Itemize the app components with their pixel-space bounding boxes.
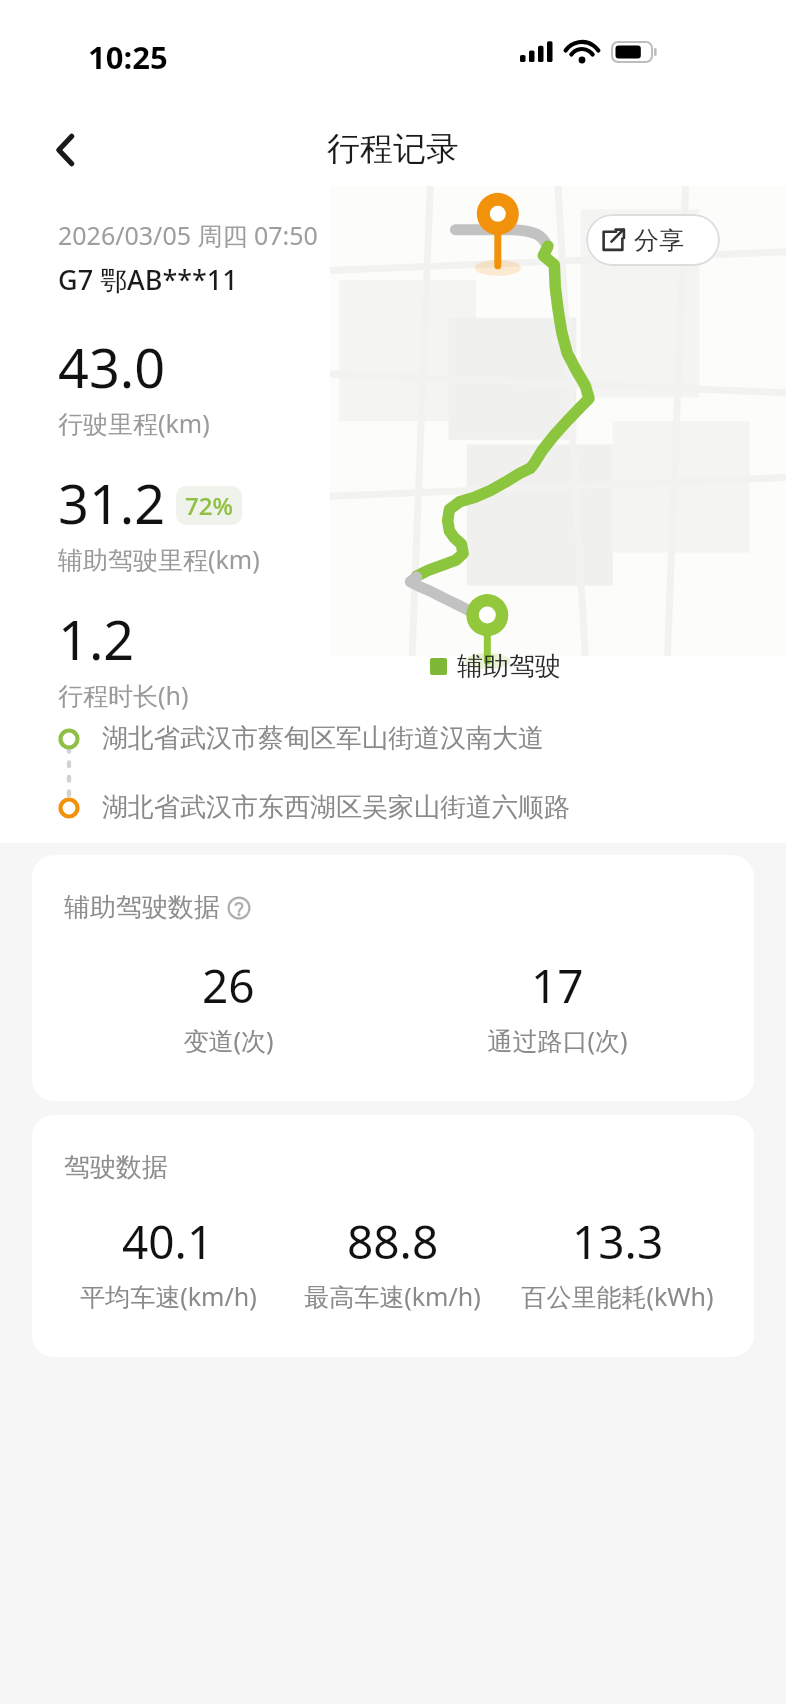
staticText: 88.8 <box>347 1210 439 1273</box>
staticText: 行程记录 <box>0 128 786 170</box>
staticText: 13.3 <box>572 1210 664 1273</box>
staticText: 40.1 <box>122 1210 214 1273</box>
button[interactable]: 驾驶数据 <box>32 1115 754 1357</box>
staticText: 72% <box>185 489 233 522</box>
staticText: 最高车速(km/h) <box>304 1279 481 1313</box>
button[interactable]: 分享 <box>586 214 720 266</box>
staticText: 26 <box>202 954 255 1017</box>
staticText: 通过路口(次) <box>487 1023 628 1057</box>
staticText: 行驶里程(km) <box>58 406 210 440</box>
staticText: 2026/03/05 周四 07:50 <box>58 218 318 252</box>
staticText: 湖北省武汉市东西湖区吴家山街道六顺路 <box>102 791 570 824</box>
button[interactable]: 辅助驾驶数据 <box>32 855 754 1101</box>
staticText: 分享 <box>634 225 684 256</box>
staticText: 辅助驾驶里程(km) <box>58 542 260 576</box>
staticText: 驾驶数据 <box>64 1151 168 1184</box>
staticText: 百公里能耗(kWh) <box>521 1279 714 1313</box>
staticText: 31.2 <box>58 466 166 540</box>
staticText: 变道(次) <box>183 1023 274 1057</box>
button[interactable]: Back <box>30 112 102 188</box>
staticText: 43.0 <box>58 330 166 404</box>
staticText: 1.2 <box>58 602 135 676</box>
other: Info <box>227 896 251 920</box>
staticText: 行程时长(h) <box>58 678 189 712</box>
staticText: 湖北省武汉市蔡甸区军山街道汉南大道 <box>102 722 544 755</box>
staticText: 平均车速(km/h) <box>80 1279 257 1313</box>
staticText: 10:25 <box>88 36 168 78</box>
staticText: 17 <box>531 954 584 1017</box>
staticText: 辅助驾驶 <box>457 650 561 683</box>
staticText: G7 鄂AB***11 <box>58 261 238 298</box>
staticText: 辅助驾驶数据 <box>64 891 220 924</box>
